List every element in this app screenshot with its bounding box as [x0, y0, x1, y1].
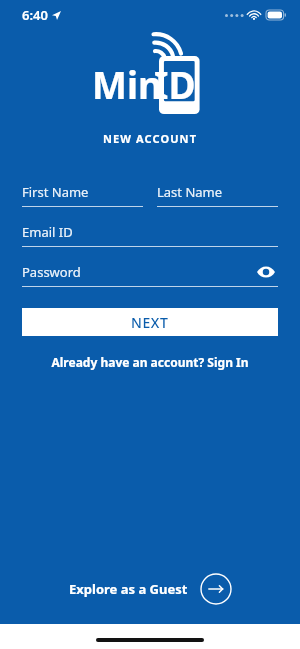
- button[interactable]: Password: [22, 261, 278, 287]
- button[interactable]: Explore as a Guest: [63, 569, 238, 609]
- staticText: Password: [22, 263, 81, 281]
- staticText: Email ID: [22, 223, 73, 241]
- staticText: Explore as a Guest: [69, 580, 188, 598]
- staticText: ID: [154, 59, 196, 109]
- other: Continue as guest: [200, 573, 232, 605]
- staticText: NEXT: [131, 313, 169, 332]
- staticText: First Name: [22, 183, 89, 201]
- staticText: Mint: [92, 59, 179, 109]
- button[interactable]: Email ID: [22, 221, 278, 247]
- staticText: NEW ACCOUNT: [103, 131, 198, 146]
- button[interactable]: First Name: [22, 181, 143, 207]
- staticText: 6:40: [22, 6, 48, 24]
- button[interactable]: Show password: [254, 261, 278, 283]
- staticText: Last Name: [157, 183, 223, 201]
- button[interactable]: Already have an account? Sign In: [22, 354, 278, 370]
- button[interactable]: Last Name: [157, 181, 278, 207]
- staticText: Already have an account? Sign In: [51, 354, 249, 370]
- button[interactable]: NEXT: [22, 308, 278, 336]
